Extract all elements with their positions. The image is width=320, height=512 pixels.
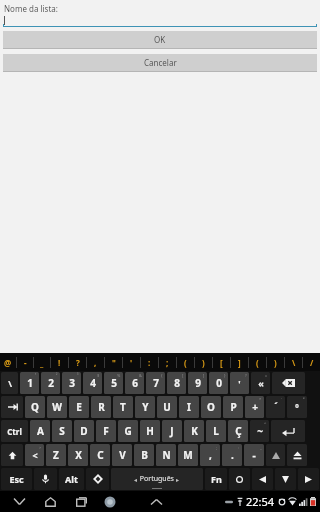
button[interactable]: ³ <box>62 372 81 394</box>
button[interactable]: Alt <box>59 468 84 490</box>
button[interactable]: - <box>17 353 33 371</box>
button[interactable]: P <box>223 396 243 418</box>
button[interactable]: , <box>87 353 104 371</box>
button[interactable]: Shift up <box>266 444 285 466</box>
button[interactable]: Backslash <box>1 372 18 394</box>
button[interactable]: : <box>222 444 242 466</box>
button[interactable]: W <box>47 396 67 418</box>
button[interactable]: ? <box>69 353 86 371</box>
button[interactable]: Y <box>135 396 155 418</box>
button[interactable]: A <box>30 420 50 442</box>
button[interactable]: D <box>74 420 94 442</box>
button[interactable]: Backspace <box>272 372 305 394</box>
button[interactable]: Hide keyboard <box>8 491 30 512</box>
button[interactable]: ◂ <box>111 468 203 490</box>
button[interactable]: ` <box>266 396 285 418</box>
button[interactable]: G <box>118 420 138 442</box>
button[interactable]: [ <box>213 353 230 371</box>
button[interactable]: $ <box>83 372 102 394</box>
staticText: ] <box>238 357 241 368</box>
button[interactable]: B <box>134 444 154 466</box>
button[interactable]: ] <box>188 372 207 394</box>
button[interactable]: Right <box>298 468 319 490</box>
button[interactable]: _ <box>34 353 50 371</box>
button[interactable]: Notifications <box>145 491 167 512</box>
button[interactable]: Function <box>205 468 227 490</box>
button[interactable]: Settings <box>86 468 109 490</box>
button[interactable]: Shift <box>1 444 23 466</box>
staticText: ( <box>184 357 187 368</box>
button[interactable]: Down <box>275 468 296 490</box>
button[interactable]: F <box>96 420 116 442</box>
button[interactable]: " <box>105 353 122 371</box>
button[interactable]: X <box>68 444 88 466</box>
button[interactable]: Control <box>1 420 28 442</box>
button[interactable]: ] <box>231 353 248 371</box>
button[interactable]: C <box>90 444 110 466</box>
button[interactable]: { <box>146 372 165 394</box>
button[interactable]: M <box>178 444 198 466</box>
button[interactable]: R <box>91 396 111 418</box>
button[interactable]: ª <box>287 396 307 418</box>
button[interactable]: ; <box>159 353 176 371</box>
button[interactable]: _ <box>244 444 264 466</box>
button[interactable]: ) <box>195 353 212 371</box>
button[interactable]: Home <box>39 491 61 512</box>
button[interactable]: Left <box>252 468 273 490</box>
button[interactable]: ( <box>249 353 266 371</box>
staticText: 2 <box>48 376 54 390</box>
button[interactable]: V <box>112 444 132 466</box>
button[interactable]: ¹ <box>20 372 39 394</box>
button[interactable]: % <box>104 372 123 394</box>
button[interactable]: Screenshot <box>99 491 121 512</box>
staticText: - <box>252 448 256 462</box>
button[interactable]: S <box>52 420 72 442</box>
button[interactable]: K <box>184 420 204 442</box>
button[interactable]: U <box>157 396 177 418</box>
button[interactable]: [ <box>167 372 186 394</box>
button[interactable]: Tab <box>1 396 23 418</box>
staticText: ` <box>281 397 283 402</box>
button[interactable]: Enter <box>271 420 305 442</box>
button[interactable]: / <box>303 353 320 371</box>
button[interactable]: & <box>125 372 144 394</box>
button[interactable]: ( <box>177 353 194 371</box>
staticText: 1 <box>27 376 33 390</box>
button[interactable]: Ç <box>228 420 248 442</box>
button[interactable]: * <box>245 396 264 418</box>
button[interactable]: ^ <box>250 420 269 442</box>
button[interactable]: E <box>69 396 89 418</box>
button[interactable]: L <box>206 420 226 442</box>
button[interactable]: > <box>25 444 44 466</box>
button[interactable]: ² <box>41 372 60 394</box>
button[interactable]: Z <box>46 444 66 466</box>
button[interactable]: Voice input <box>34 468 57 490</box>
staticText: L <box>213 424 219 438</box>
staticText: Esc <box>9 473 24 485</box>
button[interactable]: J <box>162 420 182 442</box>
button[interactable]: ' <box>123 353 140 371</box>
button[interactable]: ; <box>200 444 220 466</box>
button[interactable]: @ <box>0 353 16 371</box>
button[interactable]: \ <box>285 353 302 371</box>
button[interactable]: Hide keyboard <box>287 444 307 466</box>
button[interactable]: ? <box>230 372 249 394</box>
button[interactable]: H <box>140 420 160 442</box>
button[interactable]: » <box>251 372 270 394</box>
button[interactable]: O <box>201 396 221 418</box>
button[interactable]: Q <box>25 396 45 418</box>
staticText: ~ <box>257 424 263 438</box>
button[interactable]: OK <box>3 31 317 48</box>
button[interactable]: I <box>179 396 199 418</box>
button[interactable]: Escape <box>1 468 32 490</box>
button[interactable]: } <box>209 372 228 394</box>
button[interactable]: ) <box>267 353 284 371</box>
staticText: º <box>295 401 299 413</box>
button[interactable]: ! <box>51 353 68 371</box>
button[interactable]: Cancelar <box>3 54 317 71</box>
button[interactable]: T <box>113 396 133 418</box>
button[interactable]: : <box>141 353 158 371</box>
button[interactable]: N <box>156 444 176 466</box>
button[interactable]: Insert <box>229 468 250 490</box>
button[interactable]: Recents <box>70 491 92 512</box>
